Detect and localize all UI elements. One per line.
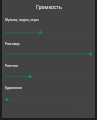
staticText: ОТМЕНА: [74, 111, 87, 115]
button[interactable]: ОТМЕНА: [71, 108, 90, 118]
staticText: Музыка, видео, игры: [5, 17, 39, 21]
button[interactable]: Рингтон: [2, 59, 95, 81]
staticText: Разговор: [5, 41, 20, 45]
staticText: Рингтон: [5, 63, 18, 67]
staticText: Громкость: [36, 4, 62, 11]
button[interactable]: Разговор: [2, 37, 95, 59]
button[interactable]: Будильник: [2, 81, 95, 103]
staticText: Будильник: [5, 85, 23, 89]
staticText: ОК: [9, 111, 14, 116]
button[interactable]: Музыка, видео, игры: [2, 13, 95, 35]
button[interactable]: ОК: [6, 108, 17, 119]
